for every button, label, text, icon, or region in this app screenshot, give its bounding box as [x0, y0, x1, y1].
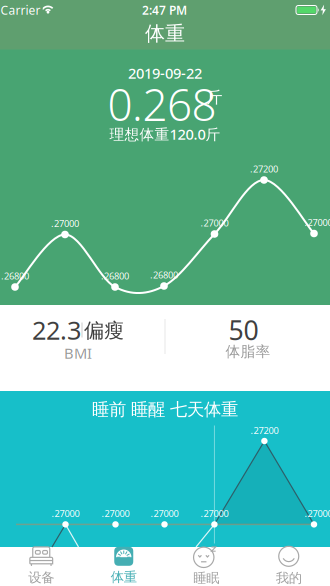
staticText: .27000: [200, 217, 228, 229]
staticText: 睡眠: [193, 570, 219, 586]
button[interactable]: 睡眠: [165, 546, 247, 586]
staticText: .27000: [200, 507, 228, 520]
staticText: .27200: [250, 424, 278, 437]
staticText: 体重: [145, 21, 185, 46]
staticText: .27000: [304, 507, 330, 520]
staticText: .26800: [101, 270, 129, 282]
staticText: .27000: [304, 216, 330, 229]
staticText: Carrier: [0, 2, 40, 18]
button[interactable]: 设备: [0, 546, 82, 586]
staticText: .27000: [101, 507, 129, 520]
staticText: 2019-09-22: [128, 63, 202, 83]
staticText: 偏瘦: [84, 318, 124, 343]
staticText: 我的: [276, 570, 302, 586]
button[interactable]: 体重: [83, 546, 165, 586]
staticText: 体重: [111, 569, 137, 585]
staticText: .27000: [51, 507, 79, 520]
staticText: 设备: [28, 569, 54, 586]
staticText: BMI: [64, 343, 92, 363]
staticText: 体脂率: [225, 342, 270, 360]
staticText: .26800: [150, 269, 178, 281]
staticText: .27000: [150, 507, 178, 520]
staticText: 22.3: [32, 313, 81, 347]
staticText: 斤: [206, 88, 222, 107]
staticText: .27200: [250, 163, 278, 175]
staticText: 50: [228, 312, 258, 348]
staticText: 0.268: [107, 75, 216, 133]
staticText: 睡前 睡醒 七天体重: [92, 399, 238, 420]
staticText: .27000: [51, 217, 79, 230]
staticText: 2:47 PM: [142, 2, 187, 18]
staticText: 理想体重120.0斤: [109, 124, 220, 144]
staticText: .26800: [1, 270, 29, 282]
button[interactable]: 我的: [248, 546, 330, 586]
